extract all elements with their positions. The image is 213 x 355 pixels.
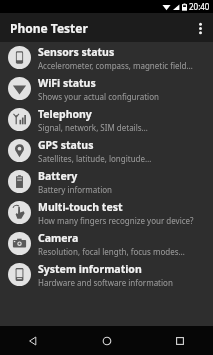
staticText: Hardware and software information xyxy=(38,277,173,288)
staticText: How many fingers recognize your device? xyxy=(38,215,194,226)
staticText: Shows your actual configuration xyxy=(38,91,159,102)
staticText: Signal, network, SIM details… xyxy=(38,122,148,133)
staticText: Phone Tester xyxy=(10,20,88,36)
button[interactable]: Recent apps xyxy=(167,328,193,354)
button[interactable]: Multi-touch test xyxy=(0,197,213,228)
button[interactable]: WiFi status xyxy=(0,73,213,104)
button[interactable]: More options xyxy=(187,15,213,41)
staticText: Multi-touch test xyxy=(38,200,123,214)
staticText: GPS status xyxy=(38,138,94,152)
staticText: Telephony xyxy=(38,107,92,121)
button[interactable]: Sensors status xyxy=(0,42,213,73)
staticText: Battery xyxy=(38,169,78,183)
button[interactable]: Back xyxy=(20,328,46,354)
staticText: WiFi status xyxy=(38,76,96,90)
staticText: Accelerometer, compass, magnetic field… xyxy=(38,60,193,71)
staticText: Sensors status xyxy=(38,45,115,59)
button[interactable]: Home xyxy=(94,328,120,354)
staticText: 20:40 xyxy=(189,1,210,12)
button[interactable]: Camera xyxy=(0,228,213,259)
staticText: Camera xyxy=(38,231,79,245)
staticText: Battery information xyxy=(38,184,113,195)
staticText: System information xyxy=(38,262,142,276)
staticText: Resolution, focal length, focus modes… xyxy=(38,246,185,257)
staticText: Satellites, latitude, longitude… xyxy=(38,153,152,164)
button[interactable]: GPS status xyxy=(0,135,213,166)
button[interactable]: Battery xyxy=(0,166,213,197)
button[interactable]: Telephony xyxy=(0,104,213,135)
button[interactable]: System information xyxy=(0,259,213,290)
